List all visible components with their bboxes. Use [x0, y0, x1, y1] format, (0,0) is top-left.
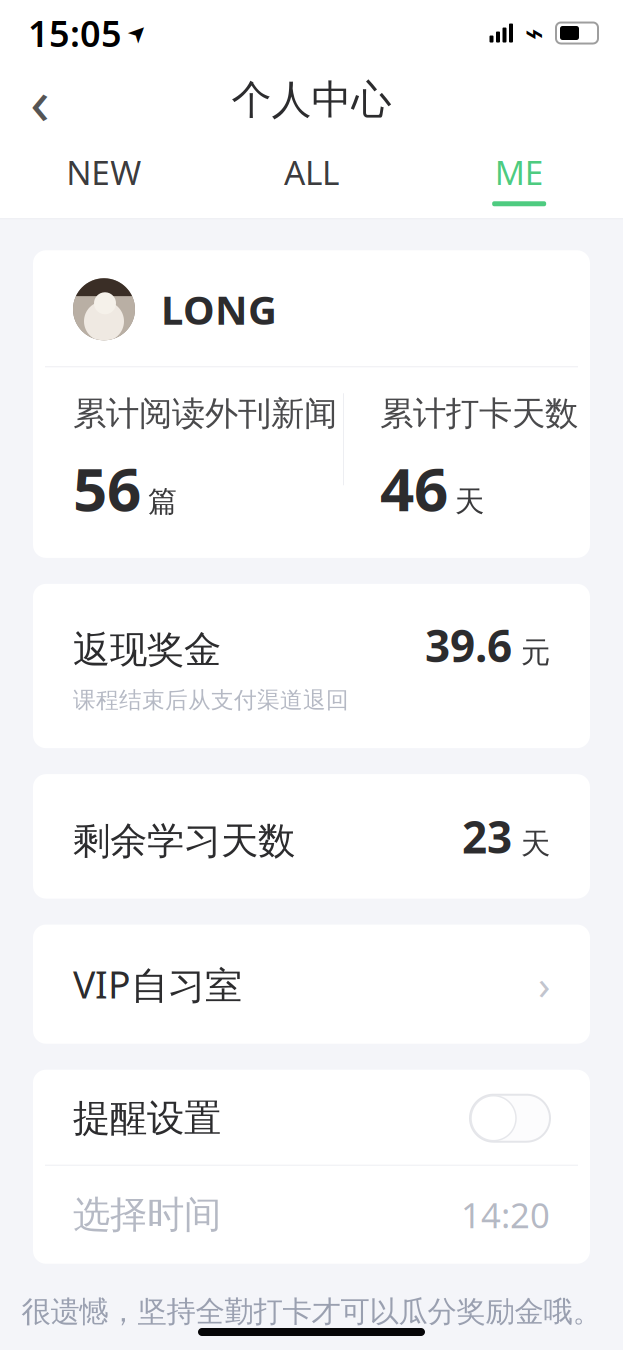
- staticText: 篇: [148, 483, 177, 519]
- staticText: 天: [512, 826, 550, 862]
- staticText: 累计阅读外刊新闻: [73, 393, 337, 434]
- staticText: 选择时间: [73, 1192, 221, 1238]
- staticText: 提醒设置: [73, 1095, 221, 1141]
- button[interactable]: 返现奖金: [33, 584, 590, 748]
- button[interactable]: Back: [8, 69, 72, 131]
- staticText: 很遗憾，坚持全勤打卡才可以瓜分奖励金哦。: [21, 1294, 601, 1330]
- staticText: 14:20: [461, 1192, 550, 1238]
- staticText: ›: [538, 958, 550, 1011]
- staticText: 15:05: [28, 9, 122, 57]
- button[interactable]: ALL: [208, 150, 415, 206]
- staticText: ‹: [30, 57, 50, 142]
- staticText: ME: [495, 150, 544, 194]
- button[interactable]: 选择时间: [33, 1166, 590, 1264]
- staticText: NEW: [66, 150, 141, 194]
- button[interactable]: NEW: [0, 150, 208, 206]
- staticText: 46: [380, 448, 448, 528]
- staticText: 23: [462, 807, 512, 866]
- staticText: 天: [455, 483, 484, 519]
- staticText: 累计打卡天数: [380, 393, 578, 434]
- staticText: 56: [73, 448, 141, 528]
- staticText: 个人中心: [231, 75, 391, 124]
- button[interactable]: ME: [415, 150, 623, 206]
- staticText: 返现奖金: [73, 627, 221, 673]
- staticText: 39.6: [425, 616, 512, 674]
- staticText: VIP自习室: [73, 959, 242, 1009]
- staticText: 元: [512, 634, 550, 670]
- button[interactable]: 剩余学习天数: [33, 774, 590, 899]
- staticText: 课程结束后从支付渠道退回: [73, 686, 349, 714]
- staticText: 剩余学习天数: [73, 818, 295, 864]
- button[interactable]: 提醒设置: [33, 1070, 590, 1165]
- staticText: ➤: [128, 20, 147, 46]
- staticText: ⌁: [524, 15, 543, 51]
- button[interactable]: VIP自习室: [33, 925, 590, 1044]
- staticText: ALL: [284, 150, 339, 194]
- staticText: LONG: [161, 283, 277, 336]
